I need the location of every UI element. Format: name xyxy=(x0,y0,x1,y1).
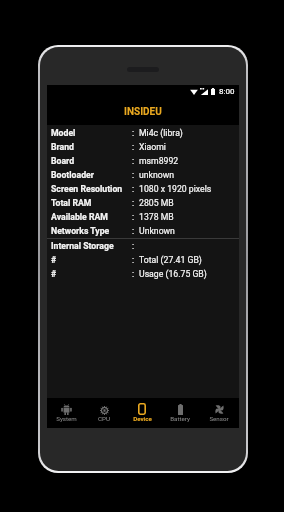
staticText: Battery xyxy=(170,415,190,422)
staticText: : xyxy=(132,156,135,166)
button[interactable]: # xyxy=(47,267,239,281)
staticText: : xyxy=(132,241,135,251)
staticText: Mi4c (libra) xyxy=(139,128,183,138)
button[interactable]: Device xyxy=(123,399,161,428)
staticText: unknown xyxy=(139,170,175,180)
staticText: 2805 MB xyxy=(139,198,174,208)
staticText: # xyxy=(51,269,132,279)
staticText: Brand xyxy=(51,142,132,152)
staticText: Unknown xyxy=(139,226,175,236)
staticText: Xiaomi xyxy=(139,142,166,152)
other: Battery xyxy=(178,404,183,415)
button[interactable]: Model xyxy=(47,126,239,140)
staticText: Model xyxy=(51,128,132,138)
staticText: : xyxy=(132,212,135,222)
staticText: System xyxy=(56,415,77,422)
staticText: Sensor xyxy=(209,415,229,422)
staticText: CPU xyxy=(98,415,110,422)
staticText: Total (27.41 GB) xyxy=(139,255,202,265)
staticText: : xyxy=(132,128,135,138)
button[interactable]: Screen Resolution xyxy=(47,182,239,196)
button[interactable]: Board xyxy=(47,154,239,168)
staticText: Bootloader xyxy=(51,170,132,180)
staticText: INSIDEU xyxy=(124,106,162,118)
staticText: : xyxy=(132,142,135,152)
button[interactable]: INSIDEU xyxy=(47,98,239,125)
button[interactable]: Total RAM xyxy=(47,196,239,210)
button[interactable]: Bootloader xyxy=(47,168,239,182)
staticText: : xyxy=(132,170,135,180)
button[interactable]: CPU xyxy=(85,399,123,428)
other: CPU xyxy=(100,406,109,415)
staticText: : xyxy=(132,184,135,194)
staticText: msm8992 xyxy=(139,156,179,166)
staticText: Available RAM xyxy=(51,212,132,222)
staticText: : xyxy=(132,198,135,208)
button[interactable]: # xyxy=(47,253,239,267)
staticText: Internal Storage xyxy=(51,241,132,251)
staticText: 1378 MB xyxy=(139,212,174,222)
button[interactable]: Brand xyxy=(47,140,239,154)
button[interactable]: Battery xyxy=(161,399,199,428)
button[interactable]: Networks Type xyxy=(47,224,239,238)
staticText: Networks Type xyxy=(51,226,132,236)
button[interactable]: Internal Storage xyxy=(47,239,239,253)
button[interactable]: Sensor xyxy=(200,399,238,428)
button[interactable]: System xyxy=(47,399,85,428)
staticText: Total RAM xyxy=(51,198,132,208)
other: Device xyxy=(138,403,146,415)
staticText: # xyxy=(51,255,132,265)
button[interactable]: Available RAM xyxy=(47,210,239,224)
staticText: Device xyxy=(133,415,152,422)
staticText: : xyxy=(132,255,135,265)
staticText: : xyxy=(132,226,135,236)
other: System xyxy=(61,404,72,415)
other: Sensor xyxy=(214,404,225,415)
staticText: 8:00 xyxy=(219,87,235,96)
staticText: 1080 x 1920 pixels xyxy=(139,184,212,194)
staticText: : xyxy=(132,269,135,279)
staticText: Usage (16.75 GB) xyxy=(139,269,207,279)
staticText: Screen Resolution xyxy=(51,184,132,194)
staticText: Board xyxy=(51,156,132,166)
